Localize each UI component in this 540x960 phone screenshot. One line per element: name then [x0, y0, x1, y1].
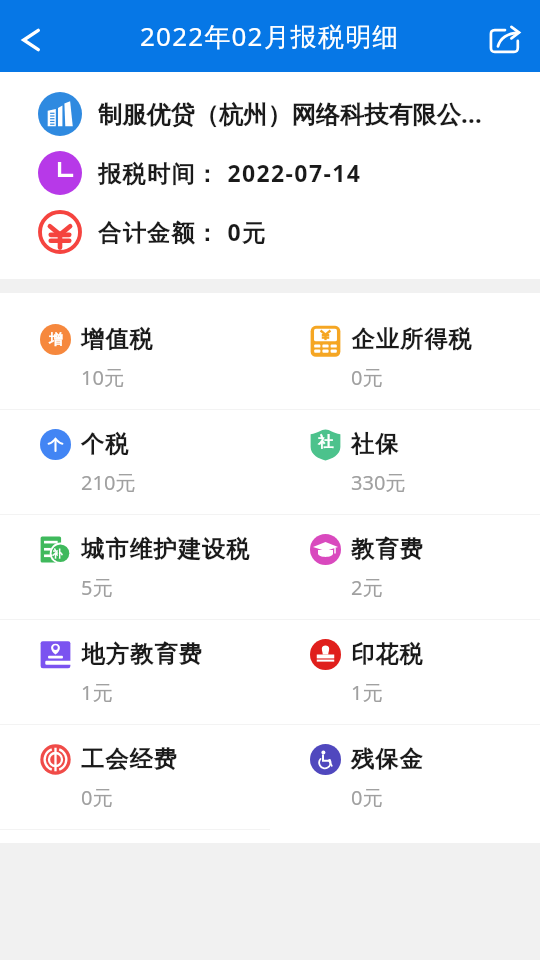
- staticText: 社保: [351, 430, 400, 459]
- button[interactable]: 个税: [0, 410, 270, 514]
- staticText: 增: [49, 331, 63, 349]
- button[interactable]: Back: [2, 11, 60, 69]
- staticText: 330元: [351, 469, 406, 496]
- button[interactable]: 地方教育费: [0, 620, 270, 724]
- staticText: 1元: [81, 679, 113, 706]
- button[interactable]: 报税时间： 2022-07-14: [0, 143, 540, 202]
- button[interactable]: 社: [270, 410, 540, 514]
- button[interactable]: 残保金: [270, 725, 540, 829]
- staticText: 企业所得税: [351, 325, 472, 354]
- staticText: 2元: [351, 574, 383, 601]
- button[interactable]: 合计金额： 0元: [0, 202, 540, 261]
- button[interactable]: 企业所得税: [270, 305, 540, 409]
- staticText: 增值税: [81, 325, 154, 354]
- staticText: 5元: [81, 574, 113, 601]
- staticText: 补: [52, 547, 62, 560]
- staticText: 1元: [351, 679, 383, 706]
- button[interactable]: 教育费: [270, 515, 540, 619]
- staticText: 0元: [351, 784, 383, 811]
- staticText: 210元: [81, 469, 136, 496]
- button[interactable]: 增: [0, 305, 270, 409]
- button[interactable]: 制服优贷（杭州）网络科技有限公...: [0, 84, 540, 143]
- button[interactable]: 印花税: [270, 620, 540, 724]
- staticText: 制服优贷（杭州）网络科技有限公...: [98, 97, 482, 130]
- staticText: 教育费: [351, 535, 424, 564]
- button[interactable]: Share: [478, 12, 532, 66]
- staticText: 城市维护建设税: [81, 535, 251, 564]
- staticText: 印花税: [351, 640, 424, 669]
- staticText: 社: [318, 433, 333, 452]
- staticText: 个税: [81, 430, 130, 459]
- staticText: 2022年02月报税明细: [140, 18, 400, 54]
- staticText: 地方教育费: [81, 640, 202, 669]
- staticText: 0元: [351, 364, 383, 391]
- staticText: 0元: [81, 784, 113, 811]
- button[interactable]: 补: [0, 515, 270, 619]
- button[interactable]: 工会经费: [0, 725, 270, 829]
- staticText: 合计金额： 0元: [98, 216, 267, 247]
- staticText: 工会经费: [81, 745, 178, 774]
- staticText: 残保金: [351, 745, 424, 774]
- staticText: 报税时间： 2022-07-14: [98, 157, 362, 188]
- staticText: 10元: [81, 364, 124, 391]
